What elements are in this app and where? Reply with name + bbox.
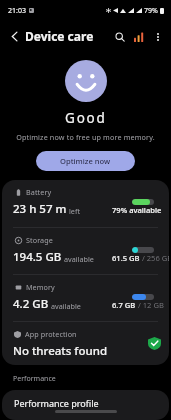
staticText: / 12 GB	[136, 300, 164, 310]
staticText: 6.7 GB	[112, 300, 136, 310]
staticText: Optimize now	[60, 156, 111, 166]
staticText: Device care	[25, 28, 94, 44]
staticText: 4.2 GB	[13, 296, 49, 312]
staticText: available	[64, 254, 94, 264]
staticText: 21:03	[8, 6, 26, 16]
button[interactable]: Battery	[2, 180, 169, 227]
staticText: No threats found	[13, 343, 108, 359]
staticText: / 256 GB	[140, 253, 169, 263]
staticText: left	[69, 206, 80, 216]
button[interactable]: Storage	[2, 228, 169, 274]
staticText: Good	[65, 109, 107, 127]
staticText: 23 h 57 m	[13, 201, 67, 217]
staticText: 79%	[144, 6, 158, 16]
staticText: available	[51, 301, 81, 311]
button[interactable]: Performance profile	[2, 390, 169, 420]
staticText: Optimize now to free up more memory.	[16, 132, 155, 142]
staticText: 79% available	[112, 205, 162, 215]
staticText: Performance profile	[14, 397, 99, 409]
staticText: App protection	[25, 329, 77, 339]
button[interactable]: Search	[110, 27, 129, 46]
staticText: Storage	[26, 235, 53, 245]
button[interactable]: Optimize now	[36, 151, 135, 171]
staticText: 61.5 GB	[112, 253, 140, 263]
button[interactable]: App protection	[2, 322, 169, 365]
button[interactable]: Memory	[2, 275, 169, 321]
staticText: 194.5 GB	[13, 249, 62, 265]
staticText: Performance	[13, 374, 56, 384]
staticText: Battery	[26, 187, 52, 197]
staticText: Memory	[26, 282, 55, 292]
button[interactable]: More options	[148, 27, 167, 46]
button[interactable]: Usage statistics	[129, 27, 148, 46]
button[interactable]: Navigate up	[4, 26, 24, 46]
